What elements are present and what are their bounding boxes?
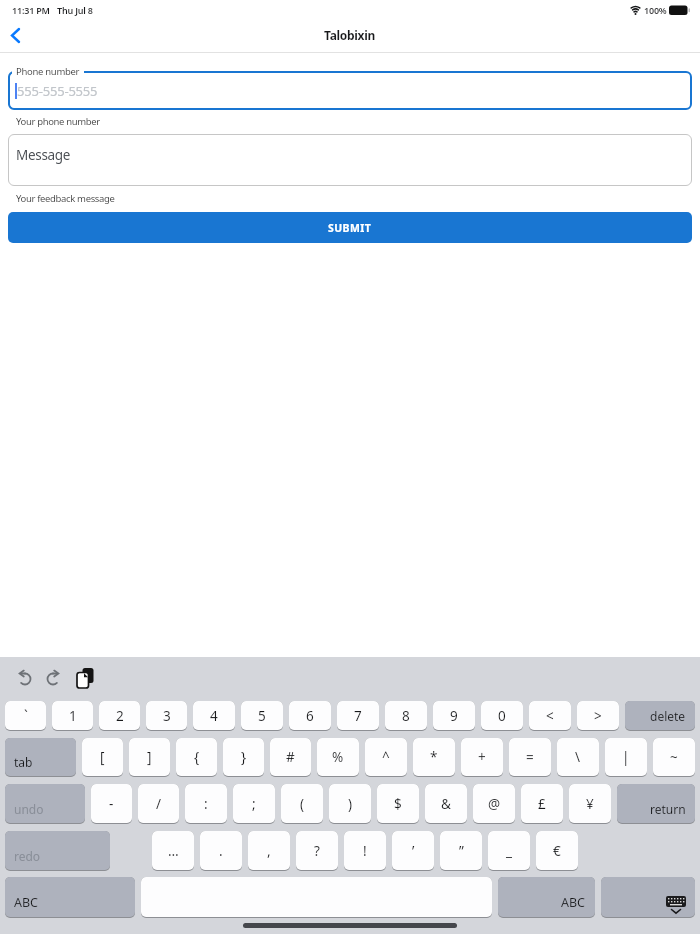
- button[interactable]: (: [281, 784, 323, 823]
- button[interactable]: return: [617, 784, 695, 823]
- button[interactable]: ): [329, 784, 371, 823]
- staticText: tab: [14, 754, 33, 770]
- staticText: 3: [163, 707, 171, 725]
- button[interactable]: ]: [129, 738, 170, 776]
- button[interactable]: 1: [52, 701, 93, 730]
- staticText: $: [394, 795, 402, 813]
- staticText: redo: [14, 848, 41, 864]
- staticText: return: [650, 801, 686, 817]
- button[interactable]: ”: [440, 831, 482, 870]
- button[interactable]: 0: [481, 701, 523, 730]
- button[interactable]: !: [344, 831, 386, 870]
- button[interactable]: ~: [653, 738, 695, 776]
- button[interactable]: ABC: [5, 877, 135, 917]
- staticText: .: [219, 842, 223, 860]
- button[interactable]: _: [488, 831, 530, 870]
- button[interactable]: ¥: [569, 784, 611, 823]
- staticText: (: [300, 795, 305, 813]
- button[interactable]: [15, 670, 33, 687]
- staticText: _: [506, 842, 512, 860]
- button[interactable]: @: [473, 784, 515, 823]
- staticText: ,: [267, 842, 271, 860]
- button[interactable]: [601, 877, 695, 917]
- staticText: delete: [650, 708, 686, 724]
- button[interactable]: 4: [193, 701, 235, 730]
- button[interactable]: 3: [146, 701, 187, 730]
- staticText: ): [348, 795, 353, 813]
- button[interactable]: 9: [433, 701, 475, 730]
- staticText: 1: [69, 707, 77, 725]
- staticText: |: [622, 748, 630, 766]
- staticText: \: [575, 748, 581, 766]
- staticText: Talobixin: [324, 27, 376, 43]
- button[interactable]: +: [461, 738, 503, 776]
- button[interactable]: ;: [233, 784, 275, 823]
- button[interactable]: 7: [337, 701, 379, 730]
- staticText: Message: [16, 146, 71, 164]
- button[interactable]: \: [557, 738, 599, 776]
- button[interactable]: delete: [625, 701, 695, 730]
- button[interactable]: ,: [248, 831, 290, 870]
- button[interactable]: <: [529, 701, 571, 730]
- button[interactable]: %: [317, 738, 359, 776]
- staticText: <: [546, 707, 554, 725]
- staticText: SUBMIT: [328, 221, 372, 235]
- button[interactable]: $: [377, 784, 419, 823]
- staticText: ?: [314, 842, 320, 860]
- button[interactable]: [45, 670, 63, 687]
- staticText: &: [441, 795, 451, 813]
- staticText: @: [488, 795, 501, 813]
- button[interactable]: 8: [385, 701, 427, 730]
- button[interactable]: €: [536, 831, 578, 870]
- staticText: Thu Jul 8: [57, 4, 93, 16]
- button[interactable]: >: [577, 701, 619, 730]
- button[interactable]: .: [200, 831, 242, 870]
- button[interactable]: 6: [289, 701, 331, 730]
- button[interactable]: ?: [296, 831, 338, 870]
- button[interactable]: -: [91, 784, 132, 823]
- button[interactable]: 5: [241, 701, 283, 730]
- staticText: -: [109, 795, 114, 813]
- staticText: 5: [258, 707, 266, 725]
- button[interactable]: }: [223, 738, 264, 776]
- button[interactable]: =: [509, 738, 551, 776]
- staticText: undo: [14, 801, 44, 817]
- button[interactable]: tab: [5, 738, 76, 776]
- button[interactable]: {: [176, 738, 217, 776]
- button[interactable]: ^: [365, 738, 407, 776]
- button[interactable]: [76, 668, 95, 688]
- staticText: `: [24, 707, 28, 725]
- button[interactable]: &: [425, 784, 467, 823]
- button[interactable]: |: [605, 738, 647, 776]
- button[interactable]: [2, 22, 28, 48]
- staticText: ¥: [586, 795, 594, 813]
- button[interactable]: undo: [5, 784, 85, 823]
- staticText: ABC: [14, 894, 39, 911]
- button[interactable]: #: [270, 738, 311, 776]
- staticText: ~: [670, 748, 678, 766]
- button[interactable]: SUBMIT: [8, 212, 692, 243]
- button[interactable]: ’: [392, 831, 434, 870]
- button[interactable]: /: [138, 784, 179, 823]
- button[interactable]: `: [5, 701, 46, 730]
- staticText: Your phone number: [16, 115, 100, 128]
- button[interactable]: …: [152, 831, 194, 870]
- staticText: *: [430, 748, 438, 766]
- button[interactable]: *: [413, 738, 455, 776]
- staticText: ]: [147, 748, 152, 766]
- staticText: ^: [382, 748, 390, 766]
- button[interactable]: ABC: [498, 877, 595, 917]
- button[interactable]: 555-555-5555: [8, 71, 692, 110]
- staticText: [: [100, 748, 105, 766]
- staticText: =: [526, 748, 534, 766]
- button[interactable]: :: [185, 784, 227, 823]
- staticText: %: [332, 748, 344, 766]
- button[interactable]: [: [82, 738, 123, 776]
- button[interactable]: Message: [8, 134, 692, 186]
- button[interactable]: £: [521, 784, 563, 823]
- button[interactable]: redo: [5, 831, 110, 870]
- staticText: !: [363, 842, 367, 860]
- button[interactable]: 2: [99, 701, 140, 730]
- staticText: +: [478, 748, 486, 766]
